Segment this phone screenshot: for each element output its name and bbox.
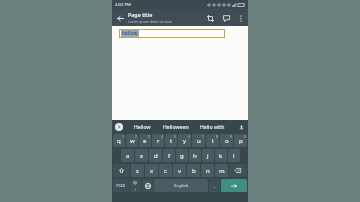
- button[interactable]: y: [178, 134, 191, 147]
- button[interactable]: v: [173, 164, 186, 177]
- staticText: Lorem ipsum dolor sit amet: [128, 19, 173, 24]
- staticText: b: [192, 167, 196, 175]
- staticText: ,: [135, 185, 137, 191]
- staticText: English: [174, 183, 189, 189]
- staticText: h: [193, 152, 197, 160]
- staticText: 1: [122, 134, 124, 139]
- staticText: s: [140, 152, 143, 160]
- staticText: Page title: [128, 11, 153, 18]
- staticText: d: [154, 152, 158, 160]
- staticText: 3: [148, 134, 150, 139]
- staticText: p: [239, 137, 243, 145]
- staticText: a: [126, 152, 130, 160]
- button[interactable]: r: [152, 134, 164, 147]
- button[interactable]: p: [234, 134, 247, 147]
- staticText: ☺: [133, 180, 138, 185]
- staticText: i: [212, 137, 214, 145]
- staticText: 6: [188, 134, 190, 139]
- staticText: 7: [202, 134, 204, 139]
- button[interactable]: q: [113, 134, 125, 147]
- staticText: m: [219, 167, 225, 175]
- staticText: hellow: [122, 30, 138, 37]
- button[interactable]: Next: [221, 179, 247, 192]
- button[interactable]: m: [215, 164, 228, 177]
- button[interactable]: b: [187, 164, 200, 177]
- button[interactable]: d: [149, 149, 162, 162]
- staticText: 9: [230, 134, 232, 139]
- button[interactable]: o: [220, 134, 233, 147]
- button[interactable]: Expand suggestions: [115, 123, 123, 131]
- button[interactable]: s: [135, 149, 148, 162]
- button[interactable]: Helloween: [162, 121, 190, 132]
- staticText: n: [206, 167, 210, 175]
- staticText: l: [233, 152, 235, 160]
- button[interactable]: c: [159, 164, 172, 177]
- staticText: g: [180, 152, 184, 160]
- button[interactable]: w: [126, 134, 138, 147]
- button[interactable]: k: [215, 149, 227, 162]
- button[interactable]: x: [145, 164, 158, 177]
- staticText: e: [143, 137, 147, 145]
- staticText: q: [117, 137, 121, 145]
- button[interactable]: English: [154, 179, 208, 192]
- staticText: f: [168, 152, 171, 160]
- staticText: 5: [174, 134, 176, 139]
- staticText: ?123: [116, 183, 126, 189]
- button[interactable]: Comment: [218, 10, 234, 26]
- staticText: o: [225, 137, 229, 145]
- button[interactable]: Comma: [130, 179, 141, 192]
- button[interactable]: h: [189, 149, 201, 162]
- button[interactable]: Hello with: [199, 121, 226, 132]
- button[interactable]: ?123: [113, 179, 129, 192]
- button[interactable]: g: [176, 149, 188, 162]
- button[interactable]: Voice input: [236, 122, 246, 132]
- staticText: x: [150, 167, 154, 175]
- button[interactable]: f: [163, 149, 175, 162]
- staticText: v: [178, 167, 182, 175]
- button[interactable]: n: [201, 164, 214, 177]
- button[interactable]: Page title: [128, 11, 202, 24]
- button[interactable]: e: [139, 134, 151, 147]
- staticText: 2: [135, 134, 137, 139]
- button[interactable]: Shift: [113, 164, 130, 177]
- staticText: k: [219, 152, 223, 160]
- button[interactable]: Hellow: [133, 121, 152, 132]
- staticText: y: [183, 137, 187, 145]
- button[interactable]: More options: [234, 11, 248, 25]
- staticText: Helloween: [163, 123, 189, 130]
- staticText: w: [130, 137, 135, 145]
- button[interactable]: j: [202, 149, 214, 162]
- staticText: Hellow: [134, 123, 151, 130]
- staticText: u: [197, 137, 201, 145]
- button[interactable]: a: [121, 149, 134, 162]
- button[interactable]: i: [206, 134, 219, 147]
- staticText: j: [207, 152, 209, 160]
- button[interactable]: Backspace: [229, 164, 247, 177]
- staticText: 0: [244, 134, 246, 139]
- button[interactable]: z: [131, 164, 144, 177]
- button[interactable]: Back: [112, 10, 128, 26]
- button[interactable]: Change language: [142, 179, 153, 192]
- staticText: c: [164, 167, 167, 175]
- staticText: 4: [161, 134, 163, 139]
- staticText: Hello with: [200, 123, 225, 130]
- staticText: z: [136, 167, 139, 175]
- button[interactable]: l: [228, 149, 240, 162]
- staticText: r: [157, 137, 160, 145]
- staticText: .: [214, 182, 216, 189]
- staticText: 4:02 PM: [115, 2, 131, 8]
- button[interactable]: Period: [209, 179, 220, 192]
- staticText: 8: [216, 134, 218, 139]
- button[interactable]: Crop: [202, 10, 218, 26]
- button[interactable]: u: [192, 134, 205, 147]
- button[interactable]: t: [165, 134, 177, 147]
- button[interactable]: hellow: [119, 29, 225, 38]
- staticText: t: [170, 137, 173, 145]
